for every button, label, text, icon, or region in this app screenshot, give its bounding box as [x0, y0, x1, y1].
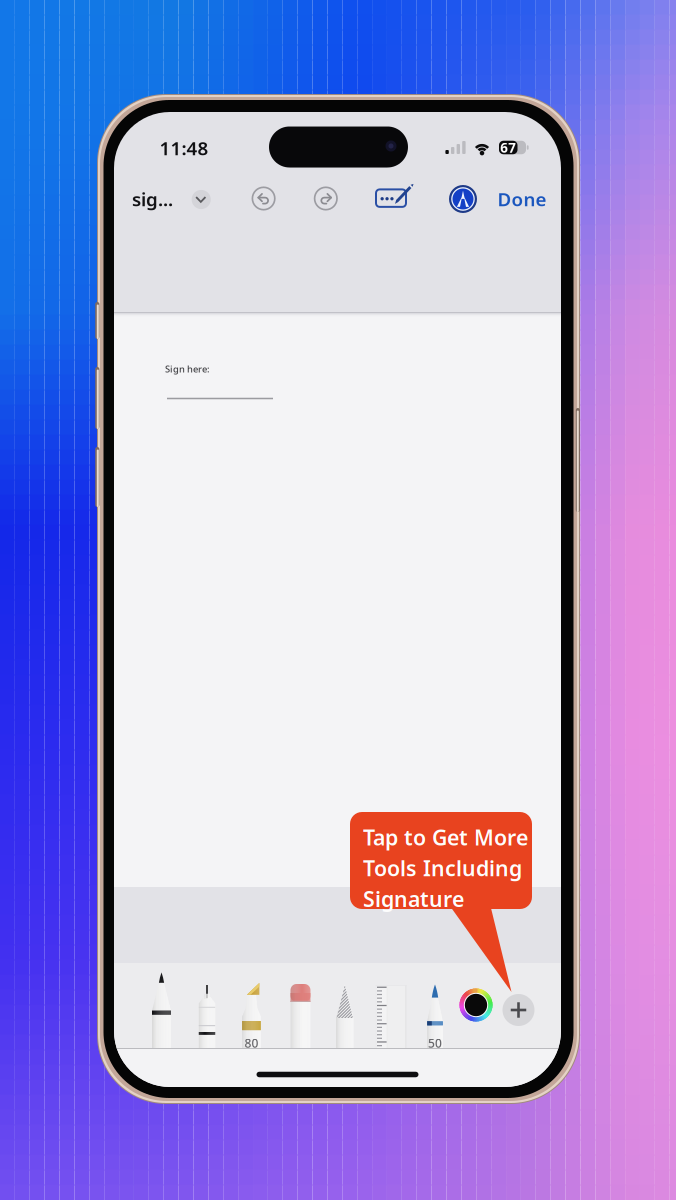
- staticText: Done: [497, 187, 546, 211]
- button[interactable]: Done: [491, 180, 553, 218]
- button[interactable]: Ruler: [376, 985, 406, 1048]
- staticText: Tap to Get More: [363, 823, 528, 851]
- button[interactable]: Document options: [182, 180, 220, 218]
- button[interactable]: Add tool: [502, 994, 534, 1026]
- staticText: sig...: [132, 187, 173, 211]
- button[interactable]: Eraser: [291, 984, 310, 1048]
- staticText: Sign here:: [165, 363, 210, 375]
- staticText: Tools Including: [363, 854, 522, 882]
- button[interactable]: Smudge: [336, 984, 353, 1048]
- button[interactable]: Colour: [459, 988, 492, 1021]
- staticText: Signature: [363, 885, 464, 913]
- button[interactable]: Undo: [244, 178, 284, 218]
- button[interactable]: sig...: [128, 180, 176, 218]
- staticText: 50: [428, 1035, 442, 1051]
- button[interactable]: Markup tools: [373, 177, 417, 217]
- button[interactable]: App: [443, 179, 483, 219]
- button[interactable]: Fine tip marker: [199, 985, 215, 1048]
- button[interactable]: Highlighter: [242, 983, 261, 1048]
- staticText: 11:48: [159, 136, 208, 160]
- staticText: 80: [244, 1035, 258, 1051]
- button[interactable]: Pen: [152, 972, 171, 1048]
- button[interactable]: Ink pen: [427, 984, 443, 1048]
- button[interactable]: Redo: [306, 178, 346, 218]
- staticText: 67: [500, 139, 516, 156]
